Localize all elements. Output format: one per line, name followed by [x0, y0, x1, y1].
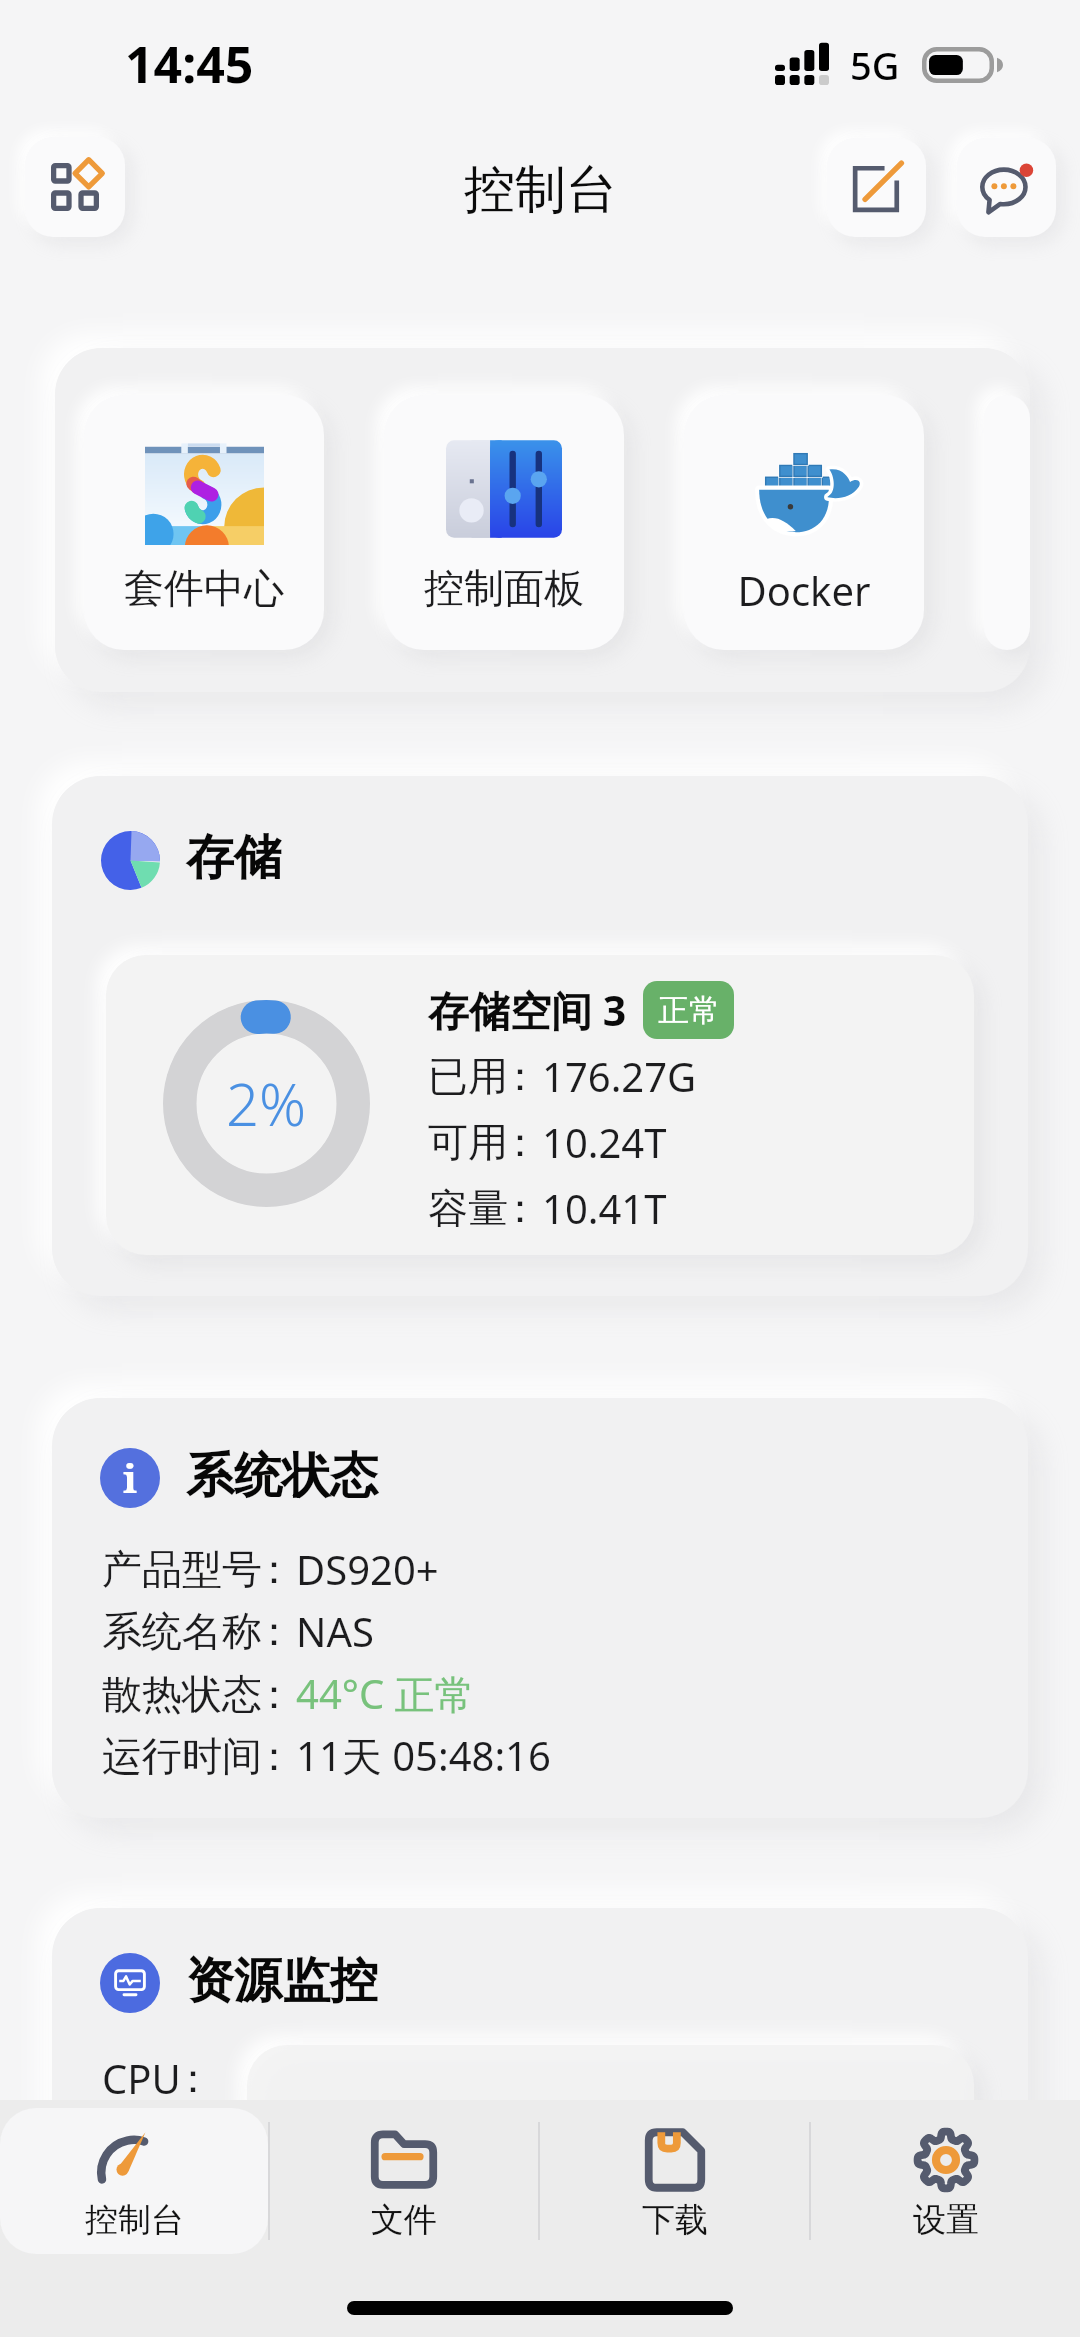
button[interactable]: 套件中心 [84, 395, 324, 650]
staticText: ： [173, 2053, 213, 2103]
staticText: i [123, 1450, 138, 1504]
staticText: DS920+ [296, 1542, 439, 1596]
button[interactable]: 控制面板 [384, 395, 624, 650]
staticText: 176.27G [542, 1049, 697, 1103]
button[interactable]: Edit [827, 138, 926, 237]
button[interactable]: 文件 [270, 2108, 538, 2254]
staticText: ： [254, 1544, 294, 1594]
staticText: 下载 [642, 2199, 708, 2241]
staticText: 资源监控 [186, 1951, 378, 2011]
staticText: 存储空间 3 [428, 982, 627, 1038]
staticText: 套件中心 [124, 563, 284, 613]
staticText: 5G [850, 39, 900, 91]
staticText: ： [254, 1731, 294, 1781]
button[interactable]: 设置 [811, 2108, 1080, 2254]
staticText: 控制面板 [424, 563, 584, 613]
button[interactable]: 下载 [540, 2108, 809, 2254]
staticText: 存储 [186, 828, 282, 888]
staticText: 产品型号 [102, 1544, 262, 1594]
button[interactable]: Messages [957, 138, 1056, 237]
staticText: ： [500, 1117, 540, 1167]
button[interactable]: 2% [106, 955, 974, 1255]
button[interactable]: i [52, 1398, 1028, 1818]
staticText: 14:45 [125, 30, 254, 98]
button[interactable]: Docker [684, 395, 924, 650]
button[interactable]: 控制台 [0, 2108, 268, 2254]
staticText: 44°C 正常 [296, 1666, 475, 1721]
staticText: 控制台 [85, 2199, 184, 2241]
staticText: ： [254, 1669, 294, 1719]
staticText: 正常 [658, 991, 720, 1030]
staticText: 10.24T [542, 1115, 667, 1169]
staticText: ： [254, 1606, 294, 1656]
staticText: ： [500, 1051, 540, 1101]
staticText: 文件 [371, 2199, 437, 2241]
staticText: 运行时间 [102, 1731, 262, 1781]
staticText: Docker [737, 563, 871, 617]
staticText: NAS [296, 1604, 374, 1658]
staticText: 11天 05:48:16 [296, 1728, 551, 1783]
staticText: 控制台 [464, 158, 617, 222]
staticText: 10.41T [542, 1181, 667, 1235]
button[interactable]: 资源监控 [52, 1908, 1028, 2308]
staticText: 2% [226, 1064, 307, 1143]
staticText: 可用 [428, 1117, 508, 1167]
staticText: CPU [102, 2051, 181, 2105]
staticText: 系统状态 [186, 1446, 378, 1506]
staticText: ： [500, 1183, 540, 1233]
staticText: 已用 [428, 1051, 508, 1101]
staticText: 系统名称 [102, 1606, 262, 1656]
staticText: 散热状态 [102, 1669, 262, 1719]
button[interactable]: Apps [25, 137, 125, 237]
staticText: 设置 [913, 2199, 979, 2241]
staticText: 容量 [428, 1183, 508, 1233]
